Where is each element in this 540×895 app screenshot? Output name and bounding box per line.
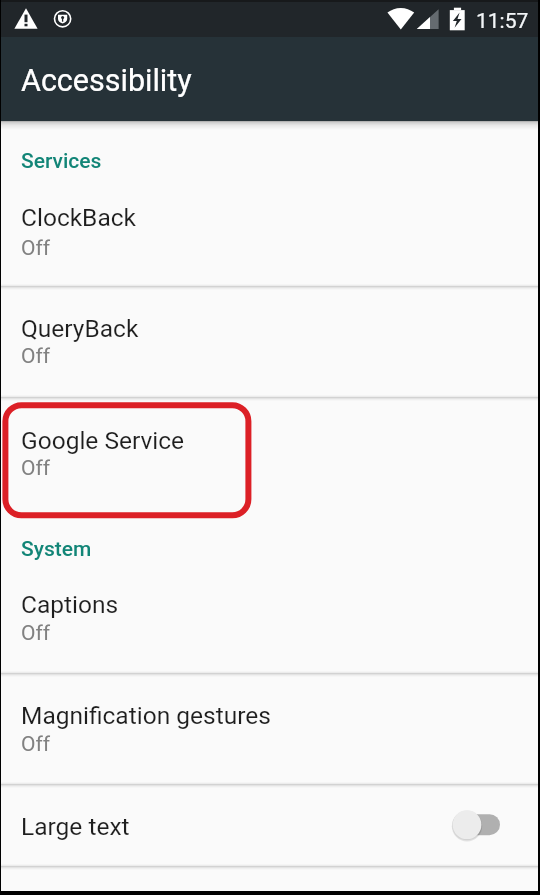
staticText: Google Service: [21, 426, 185, 455]
button[interactable]: ClockBack: [1, 185, 538, 284]
staticText: Captions: [21, 590, 119, 619]
button[interactable]: Large text: [1, 786, 538, 866]
staticText: Large text: [21, 812, 130, 841]
button[interactable]: Magnification gestures: [1, 675, 538, 783]
staticText: Services: [21, 149, 102, 174]
button[interactable]: Captions: [1, 572, 538, 673]
staticText: Off: [21, 732, 51, 757]
staticText: Accessibility: [21, 63, 192, 99]
staticText: Off: [21, 456, 51, 481]
staticText: Off: [21, 236, 51, 261]
button[interactable]: Google Service: [1, 399, 538, 515]
staticText: System: [21, 537, 92, 562]
staticText: Magnification gestures: [21, 701, 271, 730]
staticText: Off: [21, 344, 51, 369]
staticText: Off: [21, 621, 51, 646]
staticText: QueryBack: [21, 314, 139, 343]
button[interactable]: QueryBack: [1, 288, 538, 396]
staticText: 11:57: [476, 9, 529, 34]
staticText: ClockBack: [21, 203, 136, 232]
button[interactable]: Large text toggle, off: [449, 808, 505, 842]
